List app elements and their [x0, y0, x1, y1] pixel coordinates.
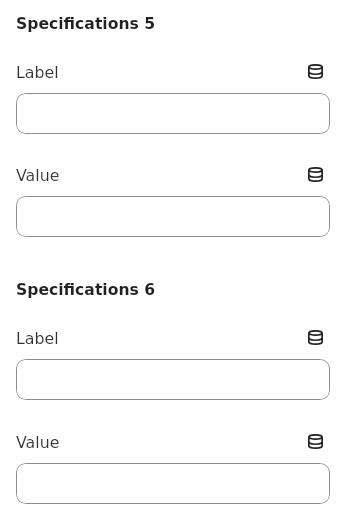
button[interactable]	[16, 93, 330, 134]
staticText: Value	[16, 433, 300, 449]
button[interactable]: Database	[300, 63, 330, 79]
button[interactable]: Database	[300, 166, 330, 182]
staticText: Specifications 5	[16, 15, 156, 33]
staticText: Specifications 6	[16, 281, 156, 299]
button[interactable]	[16, 463, 330, 504]
staticText: Label	[16, 329, 300, 345]
button[interactable]	[16, 196, 330, 237]
staticText: Label	[16, 63, 300, 79]
staticText: Value	[16, 166, 300, 182]
button[interactable]: Database	[300, 433, 330, 449]
button[interactable]	[16, 359, 330, 400]
button[interactable]: Database	[300, 329, 330, 345]
